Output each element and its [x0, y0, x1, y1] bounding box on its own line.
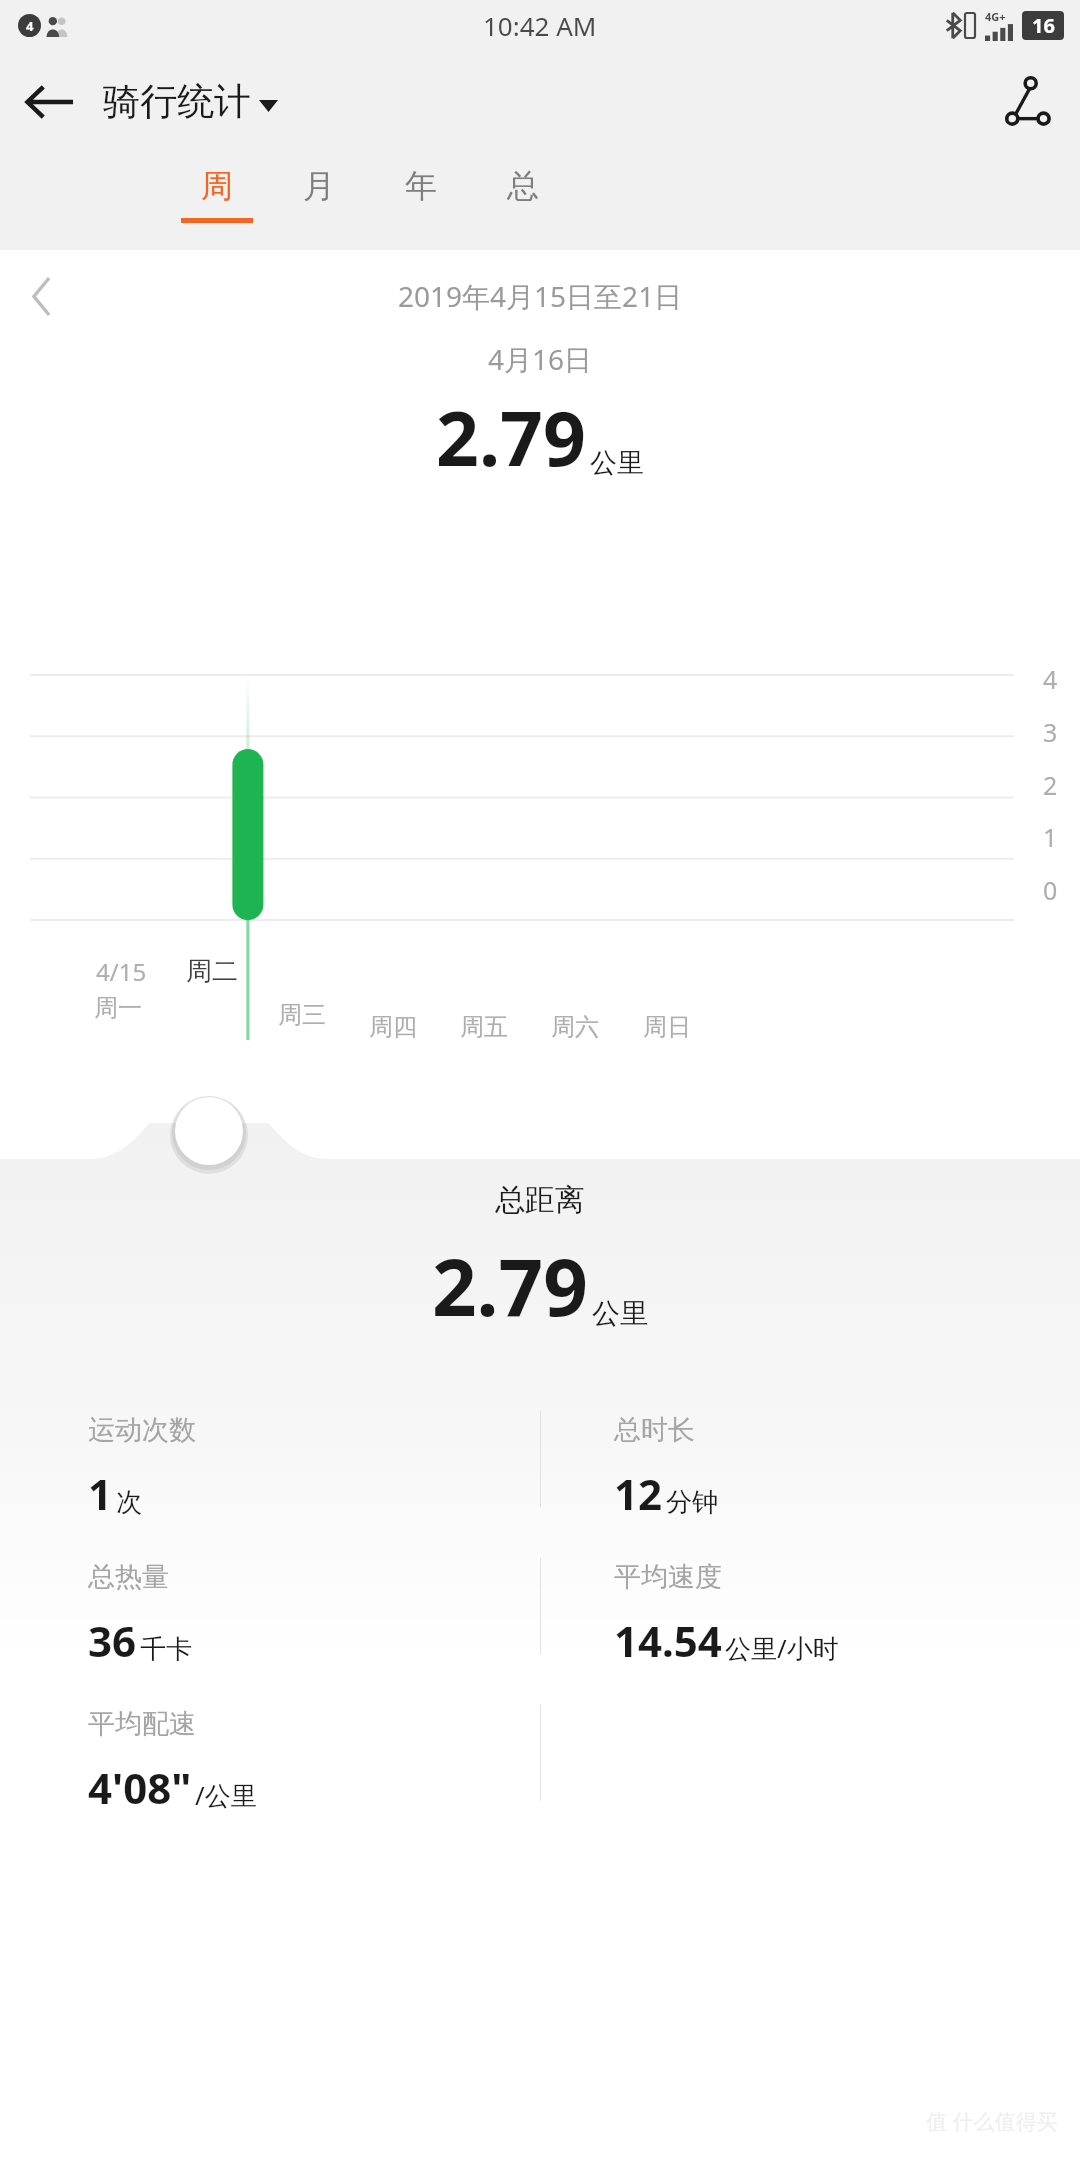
button[interactable]: 平均速度 — [540, 1542, 1080, 1669]
staticText: 4 — [26, 17, 34, 35]
button[interactable]: 总热量 — [0, 1542, 540, 1669]
staticText: 周五 — [460, 1012, 508, 1042]
staticText: 周一 — [94, 993, 142, 1023]
staticText: 公里/小时 — [725, 1630, 839, 1666]
staticText: 周四 — [369, 1012, 417, 1042]
staticText: 月 — [303, 166, 335, 206]
button[interactable]: 总 — [472, 153, 574, 250]
staticText: 4/15 — [96, 955, 147, 988]
staticText: 2.79 — [432, 1233, 588, 1339]
staticText: 4 — [1043, 662, 1058, 696]
staticText: 骑行统计 — [103, 78, 251, 125]
staticText: /公里 — [195, 1777, 257, 1813]
staticText: 分钟 — [666, 1486, 718, 1519]
staticText: 1 — [88, 1465, 113, 1522]
staticText: 2 — [1043, 768, 1058, 802]
staticText: 周二 — [186, 955, 238, 988]
button[interactable]: Previous week — [20, 266, 63, 327]
staticText: 14.54 — [614, 1612, 722, 1669]
button[interactable]: 周 — [166, 153, 268, 250]
staticText: 年 — [405, 166, 437, 206]
staticText: 周三 — [278, 1000, 326, 1030]
staticText: 值 什么值得买 — [926, 2107, 1058, 2136]
staticText: 平均配速 — [88, 1707, 196, 1741]
button[interactable]: Back — [16, 71, 84, 133]
staticText: 16 — [1032, 12, 1055, 39]
staticText: 平均速度 — [614, 1560, 722, 1594]
staticText: 2.79 — [436, 386, 586, 488]
staticText: 公里 — [590, 446, 644, 480]
staticText: 次 — [116, 1486, 142, 1519]
staticText: 公里 — [592, 1296, 648, 1331]
staticText: 10:42 AM — [483, 8, 597, 43]
staticText: 周 — [201, 166, 233, 206]
button[interactable]: 月 — [268, 153, 370, 250]
button[interactable]: 总时长 — [540, 1395, 1080, 1522]
staticText: 总热量 — [88, 1560, 169, 1594]
staticText: 周六 — [551, 1012, 599, 1042]
staticText: 4G+ — [985, 9, 1006, 24]
staticText: 总时长 — [614, 1413, 695, 1447]
staticText: 总 — [507, 166, 539, 206]
staticText: 36 — [88, 1612, 137, 1669]
staticText: 4月16日 — [488, 340, 593, 378]
staticText: 0 — [1043, 873, 1058, 907]
button[interactable]: 运动次数 — [0, 1395, 540, 1522]
button[interactable]: 骑行统计 — [103, 78, 278, 125]
staticText: 4'08" — [88, 1759, 192, 1816]
staticText: 2019年4月15日至21日 — [398, 277, 683, 315]
staticText: 千卡 — [140, 1633, 192, 1666]
staticText: 总距离 — [495, 1181, 585, 1219]
staticText: 1 — [1043, 820, 1058, 854]
staticText: 3 — [1043, 715, 1058, 749]
staticText: 运动次数 — [88, 1413, 196, 1447]
staticText: 12 — [614, 1465, 663, 1522]
button[interactable]: 年 — [370, 153, 472, 250]
button[interactable]: Share — [996, 68, 1058, 136]
button[interactable]: 平均配速 — [0, 1689, 540, 1816]
staticText: 周日 — [643, 1012, 691, 1042]
